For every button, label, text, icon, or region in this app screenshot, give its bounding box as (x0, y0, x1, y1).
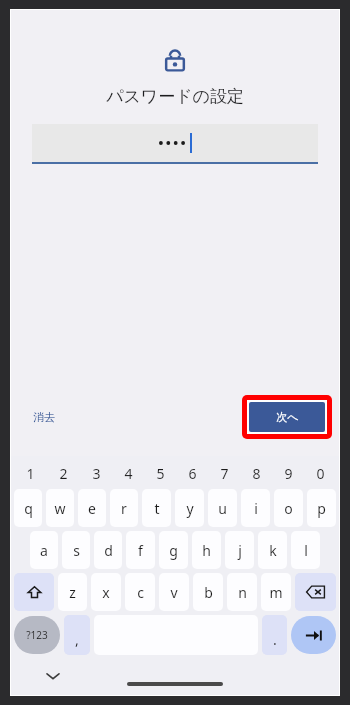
button[interactable]: j (225, 531, 254, 569)
staticText: e (88, 499, 96, 518)
staticText: j (238, 541, 242, 560)
button[interactable]: ?123 (14, 616, 60, 654)
other: Lock (162, 48, 188, 74)
button[interactable]: v (159, 573, 189, 611)
button[interactable]: Enter (291, 616, 336, 654)
button[interactable]: . (262, 615, 287, 655)
button[interactable]: 消去 (27, 404, 61, 430)
staticText: v (170, 583, 178, 602)
button[interactable]: w (46, 489, 74, 527)
staticText: 6 (188, 464, 197, 483)
button[interactable]: f (126, 531, 155, 569)
button[interactable]: k (258, 531, 287, 569)
staticText: 0 (316, 464, 325, 483)
staticText: , (75, 630, 79, 649)
staticText: 8 (252, 464, 261, 483)
staticText: 5 (156, 464, 165, 483)
button[interactable]: s (62, 531, 90, 569)
staticText: g (169, 541, 178, 560)
staticText: l (304, 541, 308, 560)
button[interactable]: r (110, 489, 138, 527)
button[interactable]: , (64, 615, 90, 655)
button[interactable]: b (193, 573, 223, 611)
button[interactable]: c (125, 573, 155, 611)
staticText: y (186, 499, 194, 518)
staticText: m (269, 583, 283, 602)
staticText: a (40, 541, 48, 560)
staticText: 4 (124, 464, 133, 483)
button[interactable]: 3 (80, 460, 112, 487)
button[interactable]: 5 (144, 460, 176, 487)
button[interactable]: x (91, 573, 121, 611)
staticText: ?123 (26, 628, 48, 642)
button[interactable]: 次へ (249, 402, 325, 432)
button[interactable]: Backspace (295, 573, 336, 611)
button[interactable]: Hide keyboard (41, 664, 65, 688)
staticText: u (218, 499, 227, 518)
staticText: 2 (59, 464, 68, 483)
staticText: b (204, 583, 213, 602)
button[interactable]: d (94, 531, 122, 569)
button[interactable]: e (78, 489, 106, 527)
button[interactable]: a (30, 531, 58, 569)
staticText: t (154, 499, 160, 518)
staticText: s (73, 541, 80, 560)
button[interactable]: m (261, 573, 291, 611)
staticText: x (102, 583, 110, 602)
button[interactable]: 7 (208, 460, 240, 487)
button[interactable]: 8 (240, 460, 272, 487)
staticText: o (284, 499, 293, 518)
button[interactable]: l (291, 531, 320, 569)
staticText: i (254, 499, 258, 518)
staticText: p (317, 499, 326, 518)
button[interactable]: 6 (176, 460, 208, 487)
button[interactable]: Shift (14, 573, 54, 611)
button[interactable]: g (159, 531, 188, 569)
button[interactable]: h (192, 531, 221, 569)
button[interactable]: 1 (14, 460, 47, 487)
staticText: 9 (284, 464, 293, 483)
staticText: 7 (220, 464, 229, 483)
button[interactable]: u (208, 489, 237, 527)
staticText: . (273, 630, 277, 649)
staticText: z (69, 583, 76, 602)
button[interactable]: t (142, 489, 171, 527)
staticText: 3 (92, 464, 101, 483)
staticText: k (269, 541, 277, 560)
staticText: 消去 (33, 410, 55, 424)
button[interactable]: i (241, 489, 270, 527)
button[interactable]: 2 (47, 460, 80, 487)
button[interactable]: 0 (304, 460, 336, 487)
staticText: 1 (26, 464, 35, 483)
staticText: f (138, 541, 143, 560)
button[interactable]: 4 (112, 460, 144, 487)
staticText: r (121, 499, 127, 518)
button[interactable]: n (227, 573, 257, 611)
staticText: h (202, 541, 211, 560)
button[interactable]: 9 (272, 460, 304, 487)
button[interactable]: z (58, 573, 87, 611)
button[interactable]: y (175, 489, 204, 527)
staticText: 次へ (276, 410, 299, 424)
staticText: q (24, 499, 33, 518)
button[interactable] (32, 124, 318, 162)
button[interactable]: p (307, 489, 336, 527)
staticText: c (137, 583, 144, 602)
button[interactable]: q (14, 489, 42, 527)
staticText: パスワードの設定 (106, 86, 244, 107)
staticText: d (104, 541, 113, 560)
button[interactable]: o (274, 489, 303, 527)
staticText: w (54, 499, 66, 518)
staticText: n (238, 583, 247, 602)
